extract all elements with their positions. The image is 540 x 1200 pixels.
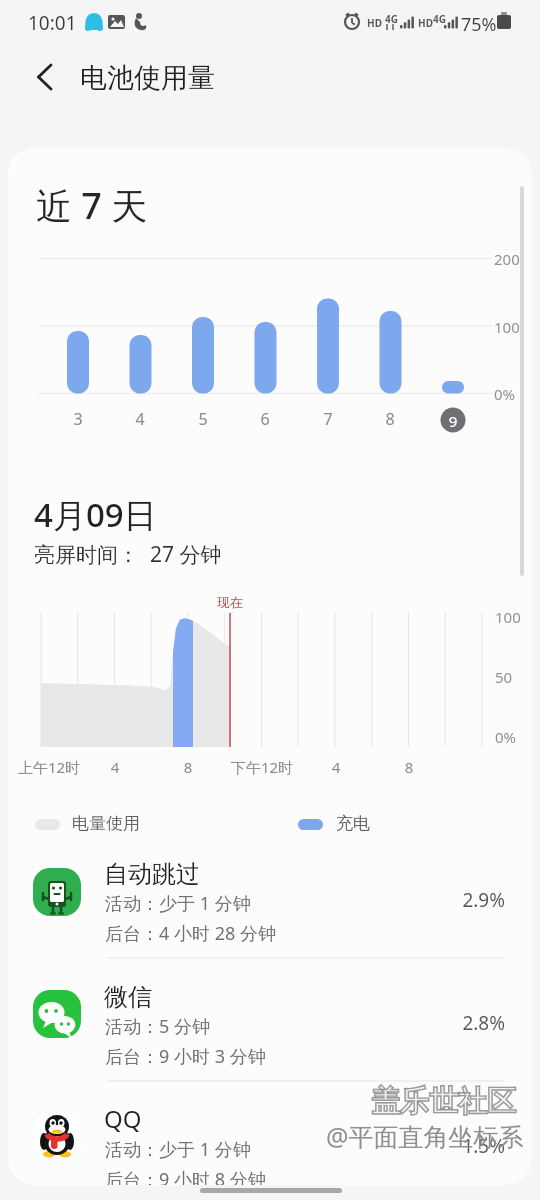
staticText: 10:01 (28, 10, 77, 36)
staticText: 200 (494, 249, 520, 269)
staticText: 近 7 天 (36, 181, 148, 230)
staticText: HD (418, 16, 433, 30)
staticText: 5 (193, 408, 213, 430)
staticText: 8 (178, 757, 198, 777)
staticText: 充电 (336, 813, 370, 834)
staticText: 4G (433, 12, 446, 26)
staticText: 下午12时 (220, 757, 304, 777)
staticText: 1.5% (435, 1133, 505, 1159)
staticText: 0% (494, 384, 516, 404)
staticText: 亮屏时间： 27 分钟 (34, 540, 222, 569)
staticText: 100 (495, 607, 521, 627)
staticText: 6 (255, 408, 275, 430)
staticText: 盖乐世社区 (371, 1083, 516, 1120)
staticText: 100 (494, 317, 520, 337)
staticText: HD (367, 16, 382, 30)
staticText: 活动：少于 1 分钟 (105, 891, 251, 916)
staticText: 0% (495, 727, 517, 747)
staticText: 后台：9 小时 8 分钟 (105, 1167, 266, 1192)
staticText: 7 (318, 408, 338, 430)
staticText: 自动跳过 (104, 859, 200, 889)
staticText: 4 (130, 408, 150, 430)
staticText: 8 (380, 408, 400, 430)
staticText: 2.9% (435, 887, 505, 913)
staticText: 上午12时 (7, 757, 91, 777)
staticText: 2.8% (435, 1010, 505, 1036)
staticText: 4 (105, 757, 125, 777)
staticText: 活动：少于 1 分钟 (105, 1137, 251, 1162)
staticText: 活动：5 分钟 (105, 1014, 210, 1039)
staticText: 电量使用 (72, 813, 140, 834)
button[interactable] (8, 973, 532, 1093)
staticText: 4G (385, 12, 398, 26)
staticText: 75% (461, 12, 497, 37)
staticText: 4 (326, 757, 346, 777)
staticText: 4月09日 (34, 492, 157, 537)
button[interactable] (8, 1096, 532, 1200)
staticText: 微信 (104, 982, 152, 1012)
staticText: 后台：4 小时 28 分钟 (105, 921, 276, 946)
staticText: @平面直角坐标系 (326, 1119, 524, 1153)
staticText: 电池使用量 (80, 61, 215, 95)
staticText: 50 (495, 667, 513, 687)
staticText: 8 (399, 757, 419, 777)
staticText: 3 (68, 408, 88, 430)
staticText: 现在 (216, 594, 244, 610)
button[interactable] (8, 850, 532, 970)
staticText: 9 (443, 411, 463, 431)
staticText: QQ (104, 1102, 142, 1135)
staticText: 盖乐世社区 (371, 1083, 516, 1120)
staticText: 后台：9 小时 3 分钟 (105, 1044, 266, 1069)
button[interactable] (24, 56, 68, 100)
